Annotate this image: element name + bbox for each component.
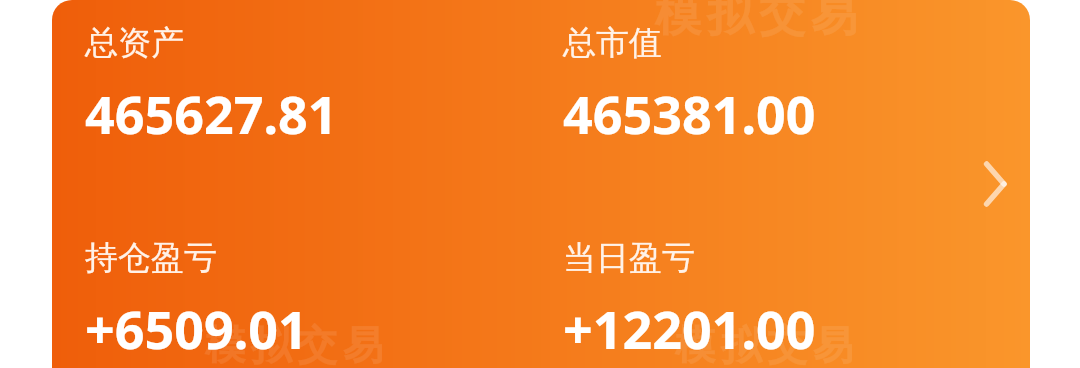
staticText: +12201.00 [563,293,816,364]
staticText: 模拟交易 [652,0,860,44]
staticText: 465381.00 [563,78,816,149]
button[interactable]: 查看详情 [964,153,1026,215]
button[interactable]: 模拟交易 [52,0,1030,368]
staticText: 当日盈亏 [563,237,695,279]
staticText: 模拟交易 [672,320,856,368]
staticText: 总市值 [563,22,662,64]
staticText: 总资产 [85,22,184,64]
staticText: 465627.81 [85,78,338,149]
staticText: 持仓盈亏 [85,237,217,279]
staticText: 模拟交易 [202,320,386,368]
staticText: +6509.01 [85,293,308,364]
